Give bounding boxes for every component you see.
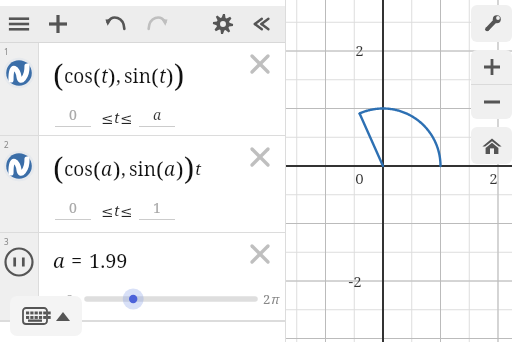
button[interactable]: Delete expression 2 bbox=[247, 144, 273, 170]
staticText: -2 bbox=[348, 271, 362, 291]
staticText: a bbox=[101, 156, 113, 182]
button[interactable]: Reset zoom bbox=[471, 127, 512, 164]
staticText: ) bbox=[174, 55, 185, 96]
staticText: ) bbox=[184, 148, 195, 189]
button[interactable]: Pause animation bbox=[0, 233, 38, 321]
staticText: , bbox=[121, 156, 126, 182]
staticText: = bbox=[71, 247, 83, 274]
staticText: ≤ bbox=[120, 203, 133, 220]
button[interactable]: Graph settings bbox=[471, 5, 512, 42]
staticText: 2 bbox=[4, 139, 9, 150]
staticText: ≤ bbox=[101, 110, 114, 127]
staticText: ( bbox=[151, 61, 159, 91]
button[interactable]: Collapse bbox=[242, 6, 280, 42]
staticText: 3 bbox=[4, 236, 9, 247]
button[interactable]: Menu bbox=[0, 6, 38, 42]
staticText: t bbox=[114, 200, 120, 220]
button[interactable]: Undo bbox=[96, 6, 136, 42]
button[interactable]: Toggle visibility 1 bbox=[0, 43, 38, 136]
staticText: sin bbox=[129, 156, 156, 182]
staticText: 1 bbox=[4, 46, 9, 57]
button[interactable]: Pause animation bbox=[0, 233, 285, 321]
staticText: 0 bbox=[69, 105, 77, 124]
staticText: 2 bbox=[489, 168, 498, 188]
staticText: ( bbox=[93, 61, 101, 91]
staticText: 1.99 bbox=[89, 247, 128, 274]
staticText: ( bbox=[53, 148, 64, 189]
button[interactable]: Delete expression 3 bbox=[247, 241, 273, 267]
staticText: cos bbox=[64, 63, 93, 89]
button[interactable]: Delete expression 1 bbox=[247, 51, 273, 77]
staticText: 2 bbox=[355, 40, 364, 60]
staticText: , bbox=[116, 63, 121, 89]
button[interactable]: Toggle keyboard bbox=[10, 296, 82, 336]
button[interactable]: Redo bbox=[136, 6, 178, 42]
button[interactable]: 0 bbox=[53, 290, 87, 308]
staticText: a bbox=[53, 247, 65, 274]
staticText: π bbox=[271, 290, 280, 308]
staticText: t bbox=[101, 63, 108, 89]
staticText: a bbox=[153, 105, 162, 124]
button[interactable]: Toggle visibility 1 bbox=[0, 43, 285, 136]
staticText: 0 bbox=[355, 168, 364, 188]
staticText: ≤ bbox=[101, 203, 114, 220]
staticText: ( bbox=[53, 55, 64, 96]
button[interactable]: Zoom in bbox=[471, 50, 512, 84]
button[interactable]: Slider for a bbox=[87, 288, 255, 310]
staticText: a bbox=[164, 156, 176, 182]
button[interactable]: Add expression bbox=[38, 6, 78, 42]
button[interactable]: Toggle visibility 2 bbox=[0, 136, 38, 233]
button[interactable]: Toggle visibility 2 bbox=[0, 136, 285, 233]
staticText: ) bbox=[113, 154, 121, 184]
button[interactable]: Zoom out bbox=[471, 85, 512, 119]
button[interactable]: Settings bbox=[204, 6, 242, 42]
staticText: t bbox=[159, 63, 166, 89]
staticText: ) bbox=[176, 154, 184, 184]
staticText: 1 bbox=[153, 198, 161, 217]
staticText: 2 bbox=[263, 290, 271, 308]
staticText: t bbox=[114, 107, 120, 127]
staticText: ≤ bbox=[120, 110, 133, 127]
staticText: 0 bbox=[66, 290, 74, 308]
staticText: ) bbox=[108, 61, 116, 91]
staticText: ( bbox=[156, 154, 164, 184]
staticText: ( bbox=[93, 154, 101, 184]
staticText: t bbox=[195, 157, 202, 180]
staticText: ) bbox=[166, 61, 174, 91]
staticText: sin bbox=[124, 63, 151, 89]
staticText: cos bbox=[64, 156, 93, 182]
staticText: 0 bbox=[69, 198, 77, 217]
